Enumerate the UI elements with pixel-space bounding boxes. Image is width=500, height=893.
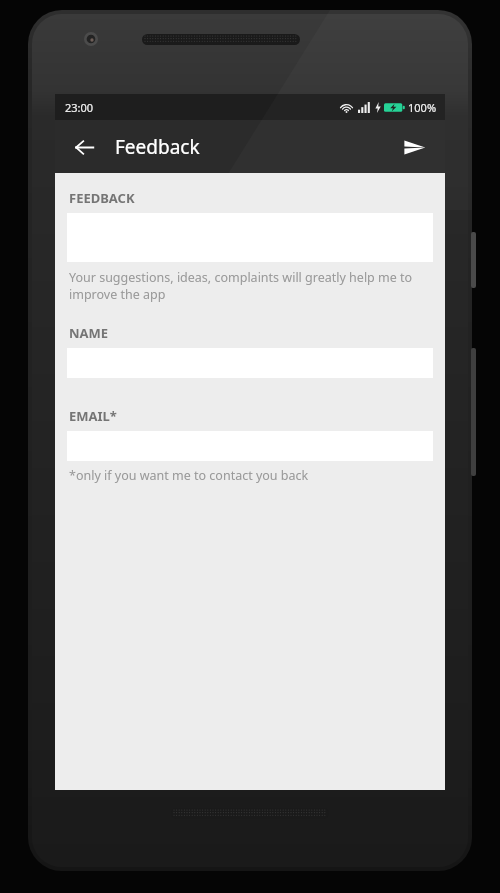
staticText: EMAIL* — [69, 407, 117, 425]
staticText: NAME — [69, 324, 109, 342]
staticText: 23:00 — [65, 100, 94, 115]
button[interactable]: Send feedback — [391, 124, 437, 170]
staticText: Feedback — [115, 134, 200, 160]
staticText: 100% — [408, 100, 437, 115]
staticText: FEEDBACK — [69, 189, 135, 207]
staticText: *only if you want me to contact you back — [69, 467, 309, 484]
staticText: Your suggestions, ideas, complaints will… — [69, 269, 427, 302]
button[interactable]: Navigate up — [61, 124, 107, 170]
